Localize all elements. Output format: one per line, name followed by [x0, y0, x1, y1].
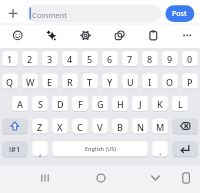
staticText: Z [37, 121, 43, 133]
button[interactable]: , [32, 144, 48, 159]
button[interactable] [144, 27, 162, 44]
button[interactable]: Y [102, 74, 118, 89]
staticText: H [117, 98, 124, 110]
staticText: B [117, 121, 123, 133]
staticText: I [148, 76, 152, 88]
staticText: W [26, 76, 35, 88]
button[interactable]: V [92, 119, 108, 134]
button[interactable]: W [22, 74, 38, 89]
button[interactable]: D [52, 96, 68, 111]
button[interactable] [143, 168, 167, 188]
staticText: N [137, 121, 144, 133]
button[interactable] [110, 27, 128, 44]
staticText: 1 [7, 53, 13, 65]
staticText: . [159, 145, 162, 157]
staticText: 4 [67, 53, 73, 65]
staticText: S [38, 98, 43, 110]
staticText: 6 [107, 53, 113, 65]
staticText: Q [6, 76, 14, 88]
button[interactable]: 2 [22, 51, 38, 66]
button[interactable] [27, 5, 161, 23]
staticText: G [97, 98, 104, 110]
staticText: English (US) [85, 145, 116, 152]
button[interactable]: English (US) [52, 141, 148, 156]
button[interactable] [43, 27, 61, 44]
staticText: Y [107, 76, 113, 88]
staticText: V [97, 121, 103, 133]
button[interactable]: 6 [102, 51, 118, 66]
button[interactable]: Post [165, 5, 194, 22]
staticText: E [47, 76, 53, 88]
button[interactable]: T [82, 74, 98, 89]
button[interactable]: B [112, 119, 128, 134]
button[interactable] [9, 27, 27, 44]
button[interactable]: 5 [82, 51, 98, 66]
button[interactable]: I [142, 74, 158, 89]
button[interactable] [176, 168, 196, 188]
button[interactable]: 0 [182, 51, 198, 66]
button[interactable] [173, 141, 198, 156]
staticText: 5 [87, 53, 93, 65]
button[interactable]: X [52, 119, 68, 134]
staticText: , [39, 146, 42, 158]
button[interactable]: Q [2, 74, 18, 89]
button[interactable]: J [132, 96, 148, 111]
staticText: K [157, 98, 163, 110]
button[interactable]: O [162, 74, 178, 89]
button[interactable]: N [132, 119, 148, 134]
button[interactable]: L [172, 96, 188, 111]
button[interactable] [33, 168, 57, 188]
button[interactable]: 1 [2, 51, 18, 66]
button[interactable]: E [42, 74, 58, 89]
staticText: D [57, 98, 64, 110]
staticText: A [17, 98, 23, 110]
staticText: 2 [27, 53, 33, 65]
button[interactable]: H [112, 96, 128, 111]
staticText: 0 [187, 53, 193, 65]
button[interactable]: S [32, 96, 48, 111]
button[interactable] [89, 168, 113, 188]
button[interactable]: U [122, 74, 138, 89]
button[interactable]: C [72, 119, 88, 134]
button[interactable]: !#1 [2, 141, 27, 156]
button[interactable]: M [152, 119, 168, 134]
staticText: R [67, 76, 73, 88]
staticText: J [139, 98, 142, 110]
button[interactable]: . [152, 143, 168, 158]
button[interactable] [173, 119, 198, 134]
staticText: Comment [32, 10, 67, 20]
staticText: F [78, 98, 83, 110]
staticText: O [166, 76, 174, 88]
button[interactable]: G [92, 96, 108, 111]
button[interactable]: A [12, 96, 28, 111]
button[interactable]: 9 [162, 51, 178, 66]
staticText: 8 [147, 53, 153, 65]
staticText: P [187, 76, 193, 88]
button[interactable]: K [152, 96, 168, 111]
button[interactable]: 8 [142, 51, 158, 66]
button[interactable]: 7 [122, 51, 138, 66]
staticText: 9 [167, 53, 173, 65]
button[interactable]: P [182, 74, 198, 89]
staticText: U [127, 76, 134, 88]
staticText: L [178, 98, 183, 110]
button[interactable] [178, 27, 196, 44]
button[interactable] [2, 119, 27, 134]
button[interactable]: 4 [62, 51, 78, 66]
staticText: !#1 [9, 144, 21, 154]
staticText: 7 [127, 53, 133, 65]
button[interactable]: F [72, 96, 88, 111]
staticText: C [77, 121, 83, 133]
staticText: 3 [47, 53, 53, 65]
staticText: T [87, 76, 93, 88]
button[interactable] [4, 4, 22, 22]
button[interactable]: 3 [42, 51, 58, 66]
button[interactable] [77, 27, 95, 44]
staticText: M [156, 121, 165, 133]
staticText: Post [172, 9, 187, 19]
button[interactable]: R [62, 74, 78, 89]
staticText: X [57, 121, 63, 133]
button[interactable]: Z [32, 119, 48, 134]
